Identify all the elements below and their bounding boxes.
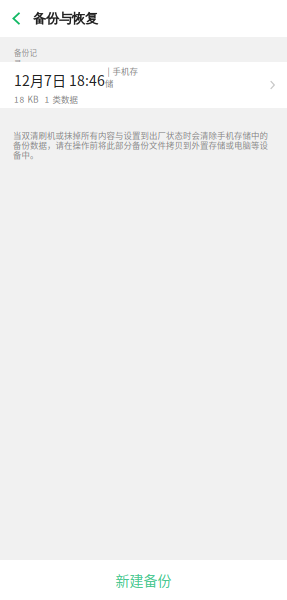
staticText: 备份与恢复 [33,10,98,27]
staticText: 新建备份 [115,570,171,590]
button[interactable]: Back [0,0,33,37]
staticText: 18 KB 1 类数据 [14,93,77,105]
button[interactable]: 新建备份 [0,560,287,600]
staticText: 12月7日 18:46 [14,70,105,90]
button[interactable]: 12月7日 18:46 [0,62,287,108]
staticText: 当双清刷机或抹掉所有内容与设置到出厂状态时会清除手机存储中的 备份数据，请在操作… [13,129,267,161]
staticText: | 手机存储 [105,65,137,89]
staticText: 备份记录 [14,47,37,69]
